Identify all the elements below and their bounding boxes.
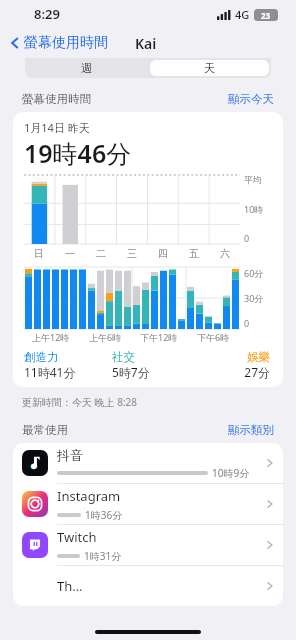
staticText: 三 <box>127 247 137 260</box>
staticText: Instagram <box>57 487 121 505</box>
staticText: 27分 <box>200 364 270 380</box>
staticText: 日 <box>34 247 44 260</box>
button[interactable]: 社交 <box>112 350 200 380</box>
staticText: 5時7分 <box>112 364 200 380</box>
button[interactable]: 顯示類別 <box>228 423 274 437</box>
button[interactable]: Twitch <box>13 525 283 565</box>
button[interactable]: 天 <box>150 60 269 76</box>
staticText: 更新時間：今天 晚上 8:28 <box>22 395 138 409</box>
staticText: 創造力 <box>24 350 112 364</box>
staticText: 一 <box>65 247 75 260</box>
staticText: 天 <box>204 61 215 75</box>
staticText: 1月14日 昨天 <box>24 120 90 135</box>
staticText: 五 <box>189 247 199 260</box>
staticText: 11時41分 <box>24 364 112 380</box>
button[interactable]: Instagram <box>13 484 283 524</box>
staticText: 抖音 <box>57 447 83 463</box>
staticText: 平均 <box>244 174 262 185</box>
staticText: 螢幕使用時間 <box>22 92 91 106</box>
staticText: 週 <box>81 61 92 75</box>
staticText: 0 <box>244 317 250 329</box>
staticText: 10時9分 <box>212 466 250 480</box>
staticText: 螢幕使用時間 <box>24 34 108 52</box>
staticText: 下午12時 <box>140 331 178 343</box>
staticText: 1時36分 <box>85 508 123 522</box>
button[interactable]: 週 <box>25 58 148 78</box>
staticText: 顯示類別 <box>228 423 274 437</box>
staticText: 顯示今天 <box>228 92 274 106</box>
staticText: 二 <box>96 247 106 260</box>
staticText: Kai <box>135 34 157 53</box>
staticText: 下午6時 <box>197 331 230 343</box>
button[interactable]: 創造力 <box>24 350 112 380</box>
staticText: 最常使用 <box>22 423 68 437</box>
staticText: Th… <box>57 577 83 595</box>
button[interactable]: Th… <box>13 566 283 606</box>
button[interactable]: 抖音 <box>13 443 283 483</box>
staticText: 60分 <box>244 267 264 279</box>
staticText: 4G <box>235 7 250 22</box>
staticText: 23 <box>261 10 271 21</box>
staticText: 上午6時 <box>89 331 122 343</box>
staticText: 四 <box>158 247 168 260</box>
other: Back <box>8 36 22 50</box>
button[interactable]: 顯示今天 <box>228 92 274 106</box>
staticText: 1時31分 <box>84 549 122 563</box>
button[interactable]: Back <box>8 34 108 52</box>
staticText: 30分 <box>244 292 264 304</box>
staticText: 六 <box>220 247 230 260</box>
staticText: 8:29 <box>34 5 60 23</box>
staticText: Twitch <box>57 528 97 546</box>
staticText: 社交 <box>112 350 200 364</box>
staticText: 19時46分 <box>24 136 132 170</box>
staticText: 10時 <box>244 203 264 215</box>
staticText: 0 <box>244 232 250 244</box>
button[interactable]: 娛樂 <box>200 350 270 380</box>
staticText: 上午12時 <box>32 331 70 343</box>
staticText: 娛樂 <box>200 350 270 364</box>
